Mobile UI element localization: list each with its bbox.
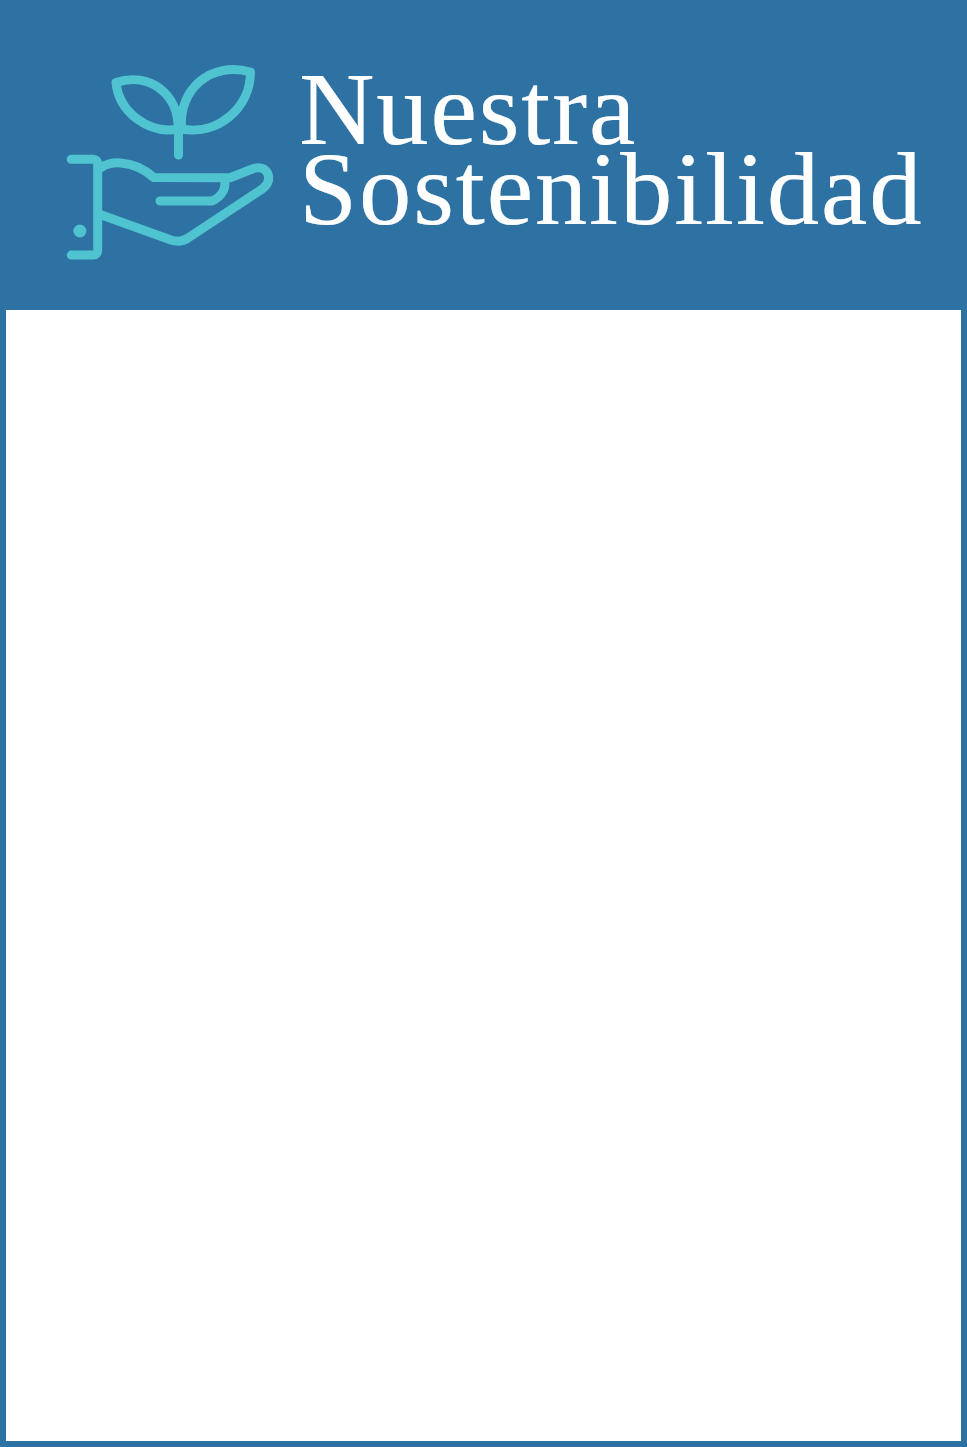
staticText: Nuestra Sostenibilidad (299, 51, 924, 247)
button[interactable]: Sustainability logo (0, 0, 967, 310)
other: Sustainability logo (60, 60, 280, 270)
